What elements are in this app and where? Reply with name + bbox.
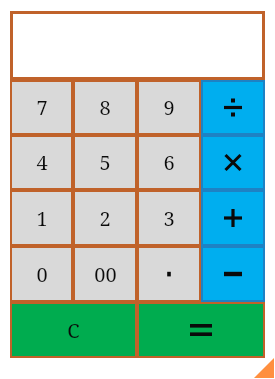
staticText: 1 <box>36 205 48 232</box>
button[interactable] <box>137 246 201 302</box>
staticText: 3 <box>163 205 175 232</box>
staticText: 7 <box>36 94 48 121</box>
button[interactable]: Plus <box>201 190 265 246</box>
staticText: 4 <box>36 149 48 176</box>
button[interactable]: 6 <box>137 135 201 190</box>
staticText: 2 <box>99 205 111 232</box>
staticText: 0 <box>36 261 48 288</box>
staticText: 5 <box>99 149 111 176</box>
staticText: 6 <box>163 149 175 176</box>
staticText: 8 <box>99 94 111 121</box>
button[interactable]: C <box>10 302 137 358</box>
button[interactable]: 2 <box>73 190 137 246</box>
button[interactable]: Divide <box>201 80 265 135</box>
button[interactable]: 3 <box>137 190 201 246</box>
button[interactable]: 00 <box>73 246 137 302</box>
button[interactable]: 9 <box>137 80 201 135</box>
staticText: 00 <box>94 261 117 288</box>
button[interactable]: 5 <box>73 135 137 190</box>
button[interactable]: Multiply <box>201 135 265 190</box>
button[interactable]: Minus <box>201 246 265 302</box>
button[interactable]: 0 <box>10 246 73 302</box>
button[interactable]: 4 <box>10 135 73 190</box>
button[interactable]: 1 <box>10 190 73 246</box>
button[interactable]: 8 <box>73 80 137 135</box>
button[interactable]: 7 <box>10 80 73 135</box>
staticText: C <box>67 317 80 344</box>
button[interactable]: Equals <box>137 302 265 358</box>
staticText: 9 <box>163 94 175 121</box>
